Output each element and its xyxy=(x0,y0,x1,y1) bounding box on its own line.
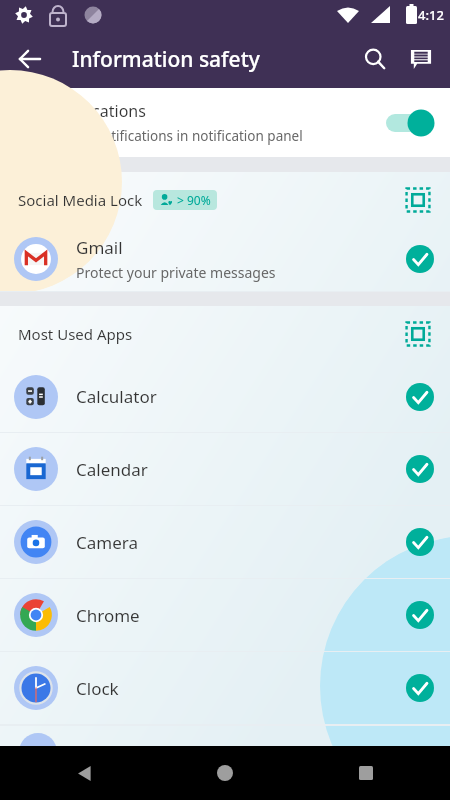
staticText: Hide notifications xyxy=(14,100,146,122)
button[interactable]: Search xyxy=(352,36,398,82)
staticText: Calculator xyxy=(76,385,157,408)
button[interactable]: Gmail xyxy=(0,227,450,291)
staticText: Most Used Apps xyxy=(18,324,133,344)
button[interactable]: Clock enabled xyxy=(402,670,438,706)
staticText: Calendar xyxy=(76,458,148,481)
button[interactable]: Messages xyxy=(398,36,444,82)
staticText: Camera xyxy=(76,531,138,554)
button[interactable]: Select all xyxy=(398,180,438,220)
staticText: Protect your private messages xyxy=(76,263,276,282)
button[interactable]: Hide notifications xyxy=(0,88,450,157)
staticText: Information safety xyxy=(72,45,260,74)
staticText: Social Media Lock xyxy=(18,190,143,210)
button[interactable]: Back xyxy=(8,37,52,81)
button[interactable]: Select all xyxy=(398,314,438,354)
button[interactable]: Home xyxy=(201,749,249,797)
button[interactable]: Camera xyxy=(0,506,450,578)
staticText: Clock xyxy=(76,677,119,700)
button[interactable]: Calculator enabled xyxy=(402,379,438,415)
button[interactable]: Chrome enabled xyxy=(402,597,438,633)
button[interactable]: Recent apps xyxy=(342,749,390,797)
button[interactable]: Camera enabled xyxy=(402,524,438,560)
button[interactable]: Back xyxy=(60,749,108,797)
button[interactable]: Hide notifications toggle xyxy=(384,107,436,139)
button[interactable]: Calculator xyxy=(0,361,450,432)
button[interactable]: Clock xyxy=(0,652,450,724)
button[interactable]: Gmail enabled xyxy=(402,241,438,277)
staticText: Gmail xyxy=(76,236,123,259)
button[interactable]: Chrome xyxy=(0,579,450,651)
staticText: > 90% xyxy=(177,192,211,208)
button[interactable]: Calendar xyxy=(0,433,450,505)
staticText: Chrome xyxy=(76,604,140,627)
staticText: Hide private notifications in notificati… xyxy=(14,127,303,145)
staticText: 4:12 xyxy=(418,6,444,24)
button[interactable]: Calendar enabled xyxy=(402,451,438,487)
